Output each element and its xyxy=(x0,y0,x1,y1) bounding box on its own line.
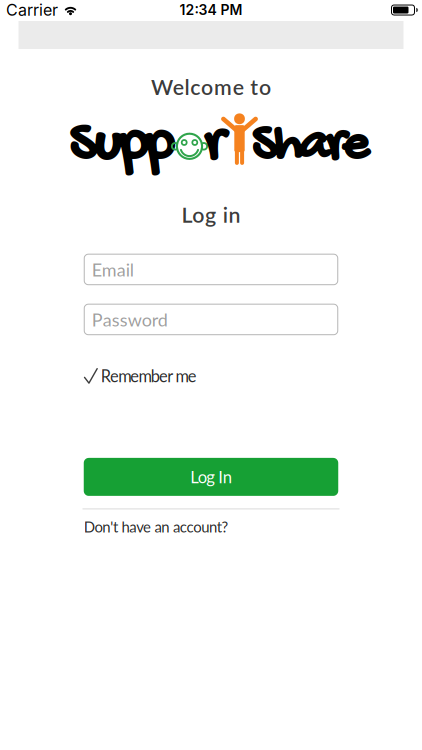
button[interactable]: Log In xyxy=(84,458,338,496)
staticText: r xyxy=(203,114,223,180)
staticText: Email xyxy=(92,259,134,280)
staticText: Log in xyxy=(181,202,240,227)
staticText: Supp xyxy=(68,113,174,180)
button[interactable]: Password xyxy=(84,304,338,335)
staticText: 12:34 PM xyxy=(179,1,242,18)
staticText: Don't have an account? xyxy=(84,518,229,536)
staticText: Welcome to xyxy=(151,74,271,100)
staticText: Password xyxy=(92,309,168,330)
staticText: Remember me xyxy=(101,366,197,386)
button[interactable]: Remember me xyxy=(84,368,338,384)
button[interactable]: Email xyxy=(84,254,338,285)
staticText: Carrier xyxy=(6,0,58,20)
button[interactable]: Don't have an account? xyxy=(84,518,338,536)
staticText: Share xyxy=(251,116,369,179)
staticText: Log In xyxy=(190,467,232,487)
